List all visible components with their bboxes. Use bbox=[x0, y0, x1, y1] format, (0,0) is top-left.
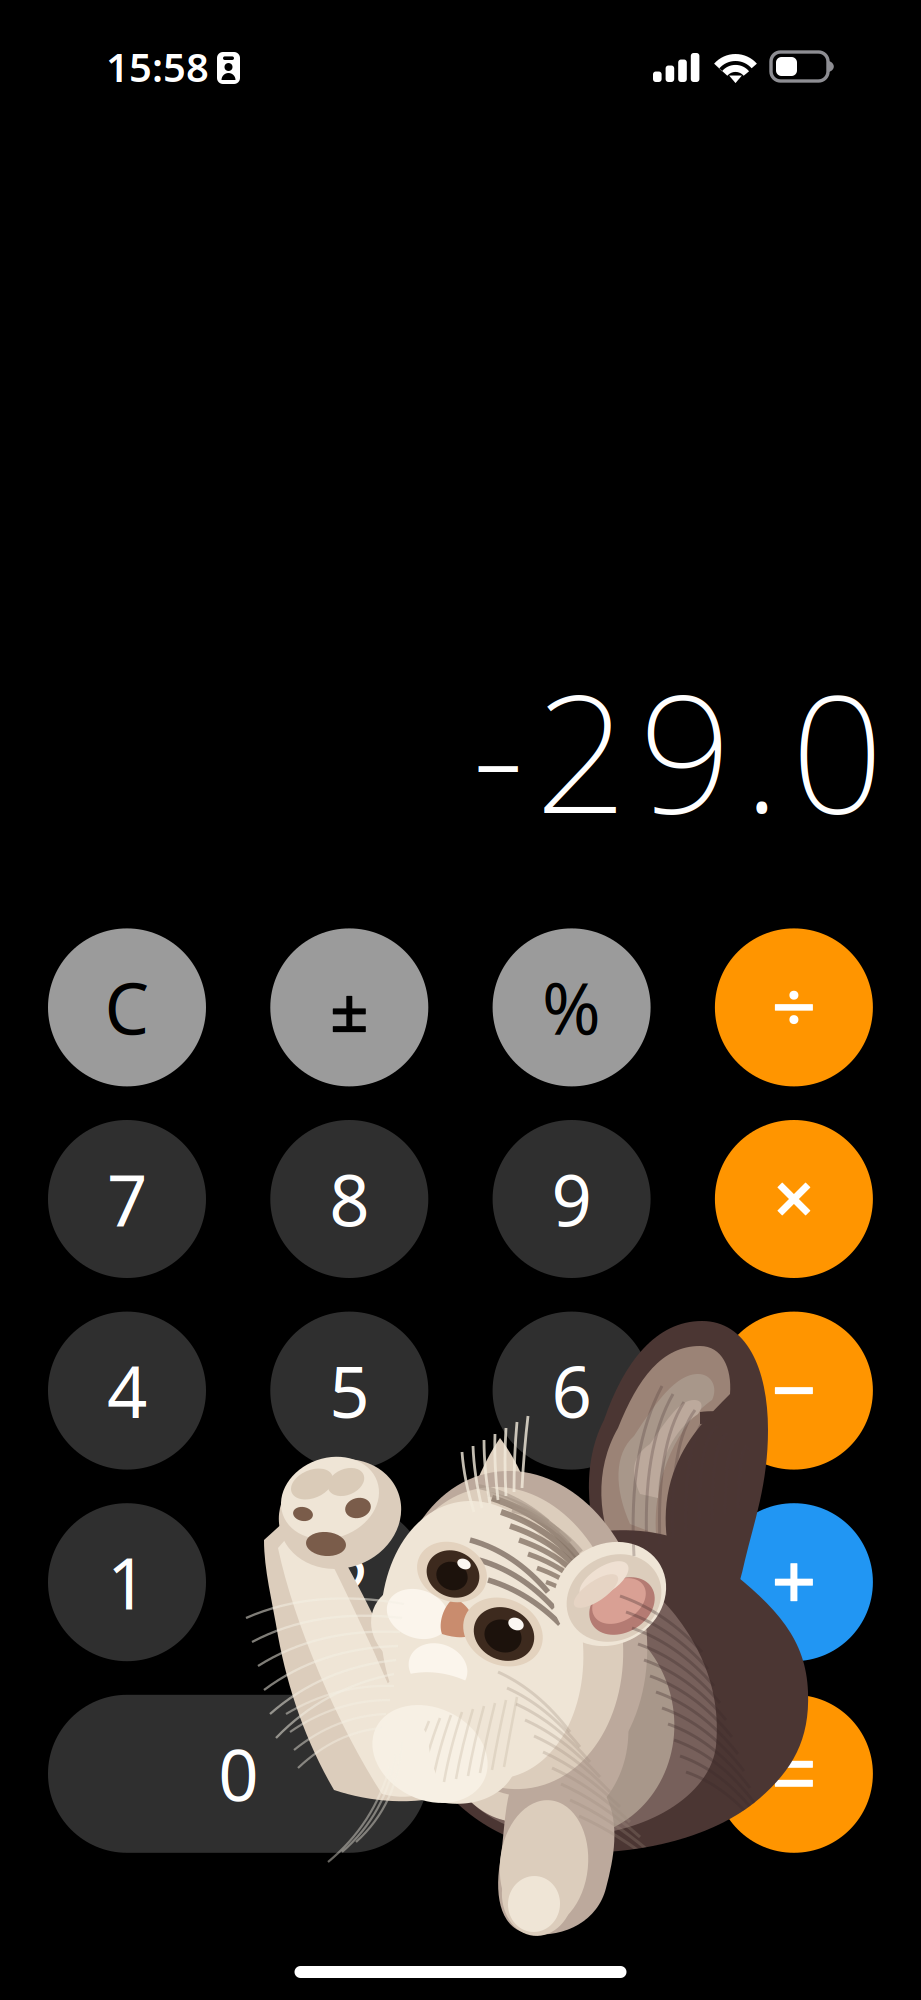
button[interactable]: . bbox=[493, 1695, 651, 1853]
staticText: -29.0 bbox=[472, 642, 884, 858]
button[interactable]: 6 bbox=[493, 1312, 651, 1470]
button[interactable]: % bbox=[493, 928, 651, 1086]
button[interactable]: 9 bbox=[493, 1120, 651, 1278]
staticText: 6 bbox=[552, 1344, 592, 1437]
button[interactable]: Add bbox=[715, 1503, 873, 1661]
staticText: C bbox=[104, 960, 149, 1054]
staticText: 1 bbox=[107, 1535, 147, 1629]
staticText: 3 bbox=[552, 1535, 592, 1629]
staticText: 7 bbox=[107, 1152, 147, 1246]
staticText: . bbox=[562, 1727, 581, 1821]
button[interactable]: 1 bbox=[48, 1503, 206, 1661]
staticText: 15:58 bbox=[106, 40, 209, 93]
button[interactable]: 7 bbox=[48, 1120, 206, 1278]
staticText: 0 bbox=[218, 1727, 258, 1821]
button[interactable]: Divide bbox=[715, 928, 873, 1086]
button[interactable]: Subtract bbox=[715, 1312, 873, 1470]
staticText: % bbox=[542, 960, 601, 1054]
button[interactable]: 4 bbox=[48, 1312, 206, 1470]
button[interactable]: 2 bbox=[270, 1503, 428, 1661]
button[interactable]: 5 bbox=[270, 1312, 428, 1470]
button[interactable]: Equals bbox=[715, 1695, 873, 1853]
button[interactable]: 0 bbox=[48, 1695, 428, 1853]
staticText: 2 bbox=[329, 1535, 369, 1629]
button[interactable]: C bbox=[48, 928, 206, 1086]
staticText: 4 bbox=[107, 1344, 147, 1437]
button[interactable]: Plus Minus bbox=[270, 928, 428, 1086]
staticText: 8 bbox=[329, 1152, 369, 1246]
button[interactable]: 8 bbox=[270, 1120, 428, 1278]
button[interactable]: 3 bbox=[493, 1503, 651, 1661]
staticText: 5 bbox=[329, 1344, 369, 1437]
button[interactable]: Multiply bbox=[715, 1120, 873, 1278]
staticText: 9 bbox=[552, 1152, 592, 1246]
